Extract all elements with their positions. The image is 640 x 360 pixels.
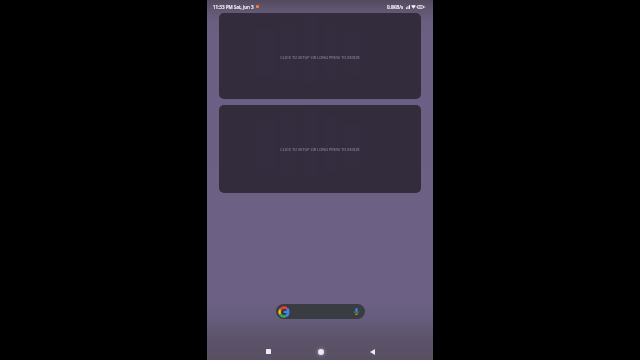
staticText: CLICK TO SETUP OR LONG PRESS TO RESIZE (280, 55, 360, 60)
button[interactable]: Search (276, 304, 365, 319)
button[interactable]: CLICK TO SETUP OR LONG PRESS TO RESIZE (219, 13, 421, 99)
staticText: 0.0KB/s (387, 4, 404, 10)
staticText: 11:33 PM Sat, Jun 3 (213, 4, 254, 10)
button[interactable]: Recent apps (258, 341, 279, 360)
button[interactable]: CLICK TO SETUP OR LONG PRESS TO RESIZE (219, 105, 421, 193)
button[interactable]: Home (310, 341, 331, 360)
button[interactable]: Back (362, 341, 383, 360)
staticText: CLICK TO SETUP OR LONG PRESS TO RESIZE (280, 147, 360, 152)
